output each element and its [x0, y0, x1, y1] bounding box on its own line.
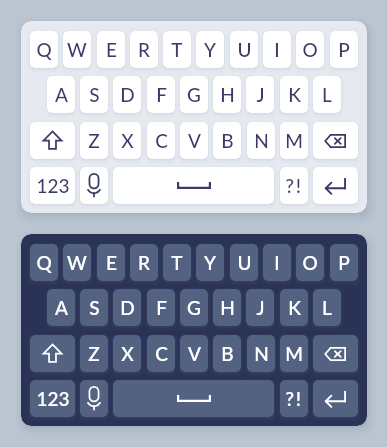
staticText: W: [67, 38, 87, 61]
button[interactable]: T: [163, 31, 191, 68]
staticText: N: [254, 129, 269, 152]
button[interactable]: Enter: [313, 380, 358, 417]
button[interactable]: V: [180, 335, 208, 372]
button[interactable]: Space: [113, 167, 274, 204]
staticText: P: [338, 251, 350, 274]
button[interactable]: C: [147, 335, 175, 372]
button[interactable]: G: [180, 289, 208, 326]
staticText: B: [221, 342, 234, 365]
button[interactable]: Shift: [30, 335, 75, 372]
staticText: G: [187, 296, 201, 319]
button[interactable]: S: [80, 289, 108, 326]
button[interactable]: Z: [80, 122, 108, 159]
staticText: A: [55, 83, 68, 106]
staticText: H: [220, 83, 235, 106]
button[interactable]: F: [147, 76, 175, 113]
button[interactable]: F: [147, 289, 175, 326]
button[interactable]: E: [97, 244, 125, 281]
button[interactable]: ?!: [280, 380, 308, 417]
staticText: U: [237, 251, 252, 274]
button[interactable]: Enter: [313, 167, 358, 204]
staticText: Q: [36, 38, 52, 61]
button[interactable]: R: [130, 244, 158, 281]
button[interactable]: A: [47, 76, 75, 113]
staticText: N: [254, 342, 269, 365]
button[interactable]: V: [180, 122, 208, 159]
button[interactable]: C: [147, 122, 175, 159]
staticText: ?!: [285, 387, 303, 410]
button[interactable]: X: [113, 335, 141, 372]
button[interactable]: Voice input: [80, 167, 108, 204]
button[interactable]: 123: [30, 167, 75, 204]
button[interactable]: H: [213, 289, 241, 326]
button[interactable]: Q: [30, 244, 58, 281]
button[interactable]: K: [280, 76, 308, 113]
button[interactable]: Backspace: [313, 335, 358, 372]
button[interactable]: N: [247, 122, 275, 159]
button[interactable]: ?!: [280, 167, 308, 204]
button[interactable]: Y: [196, 244, 224, 281]
button[interactable]: 123: [30, 380, 75, 417]
button[interactable]: Shift: [30, 122, 75, 159]
button[interactable]: E: [97, 31, 125, 68]
button[interactable]: L: [313, 289, 341, 326]
button[interactable]: O: [296, 244, 324, 281]
button[interactable]: Space: [113, 380, 274, 417]
staticText: S: [89, 296, 100, 319]
button[interactable]: I: [263, 244, 291, 281]
button[interactable]: J: [246, 289, 274, 326]
button[interactable]: Z: [80, 335, 108, 372]
staticText: J: [256, 83, 265, 106]
staticText: Q: [36, 251, 52, 274]
staticText: R: [138, 251, 150, 274]
button[interactable]: Voice input: [80, 380, 108, 417]
button[interactable]: U: [230, 244, 258, 281]
button[interactable]: L: [313, 76, 341, 113]
button[interactable]: Backspace: [313, 122, 358, 159]
button[interactable]: D: [113, 76, 141, 113]
staticText: ?!: [285, 174, 303, 197]
button[interactable]: N: [247, 335, 275, 372]
staticText: C: [155, 342, 168, 365]
button[interactable]: B: [213, 122, 241, 159]
button[interactable]: Y: [196, 31, 224, 68]
staticText: H: [220, 296, 235, 319]
button[interactable]: T: [163, 244, 191, 281]
button[interactable]: H: [213, 76, 241, 113]
staticText: X: [121, 129, 134, 152]
button[interactable]: U: [230, 31, 258, 68]
button[interactable]: P: [330, 31, 358, 68]
staticText: D: [120, 83, 135, 106]
button[interactable]: W: [63, 31, 91, 68]
button[interactable]: J: [246, 76, 274, 113]
button[interactable]: X: [113, 122, 141, 159]
button[interactable]: W: [63, 244, 91, 281]
staticText: B: [221, 129, 234, 152]
staticText: K: [288, 296, 301, 319]
button[interactable]: G: [180, 76, 208, 113]
button[interactable]: D: [113, 289, 141, 326]
button[interactable]: S: [80, 76, 108, 113]
button[interactable]: I: [263, 31, 291, 68]
staticText: K: [288, 83, 301, 106]
staticText: M: [285, 129, 303, 152]
staticText: W: [67, 251, 87, 274]
staticText: D: [120, 296, 135, 319]
button[interactable]: B: [213, 335, 241, 372]
staticText: Y: [204, 251, 216, 274]
button[interactable]: M: [280, 335, 308, 372]
button[interactable]: O: [296, 31, 324, 68]
staticText: Y: [204, 38, 216, 61]
button[interactable]: Q: [30, 31, 58, 68]
staticText: V: [188, 129, 201, 152]
button[interactable]: A: [47, 289, 75, 326]
button[interactable]: K: [280, 289, 308, 326]
staticText: M: [285, 342, 303, 365]
staticText: T: [171, 251, 183, 274]
staticText: V: [188, 342, 201, 365]
button[interactable]: P: [330, 244, 358, 281]
button[interactable]: R: [130, 31, 158, 68]
staticText: S: [89, 83, 100, 106]
staticText: I: [274, 38, 280, 61]
button[interactable]: M: [280, 122, 308, 159]
